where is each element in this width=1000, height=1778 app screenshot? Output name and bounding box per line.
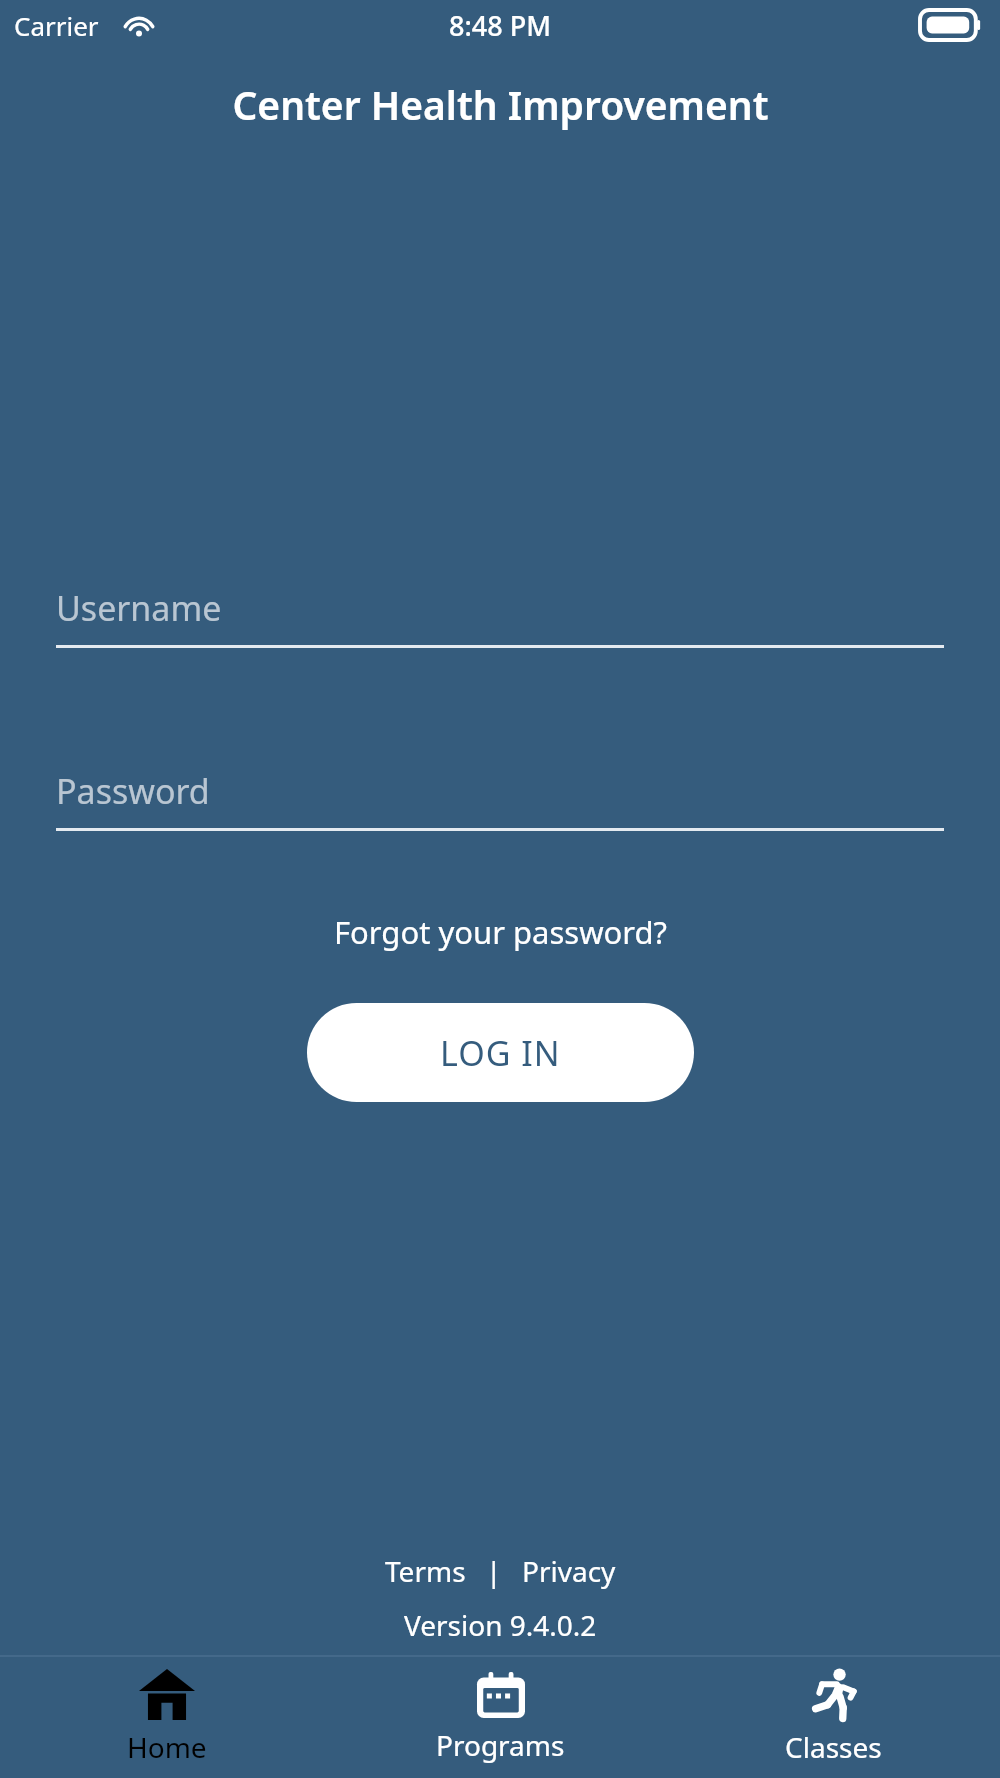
button[interactable]: Username bbox=[56, 585, 944, 648]
staticText: Forgot your password? bbox=[334, 911, 667, 953]
staticText: | bbox=[486, 1552, 502, 1590]
other: Programs bbox=[477, 1672, 525, 1718]
staticText: Carrier bbox=[14, 8, 99, 43]
button[interactable]: Forgot your password? bbox=[324, 905, 677, 959]
staticText: Programs bbox=[436, 1726, 565, 1764]
staticText: Terms bbox=[385, 1552, 466, 1590]
staticText: Center Health Improvement bbox=[232, 78, 769, 131]
button[interactable]: Classes bbox=[667, 1657, 1000, 1778]
button[interactable]: LOG IN bbox=[307, 1003, 694, 1102]
button[interactable]: Terms bbox=[379, 1548, 472, 1594]
staticText: Password bbox=[56, 768, 210, 814]
staticText: 8:48 PM bbox=[449, 7, 551, 44]
other: Classes bbox=[811, 1669, 857, 1720]
staticText: Privacy bbox=[522, 1552, 616, 1590]
staticText: Home bbox=[127, 1728, 207, 1766]
staticText: Username bbox=[56, 585, 222, 631]
staticText: LOG IN bbox=[440, 1030, 561, 1076]
staticText: Version 9.4.0.2 bbox=[404, 1606, 597, 1644]
button[interactable]: Privacy bbox=[516, 1548, 622, 1594]
button[interactable]: Programs bbox=[334, 1657, 667, 1778]
button[interactable]: Password bbox=[56, 768, 944, 831]
staticText: Classes bbox=[785, 1728, 882, 1766]
button[interactable]: Home bbox=[0, 1657, 334, 1778]
other: Home bbox=[139, 1669, 195, 1720]
